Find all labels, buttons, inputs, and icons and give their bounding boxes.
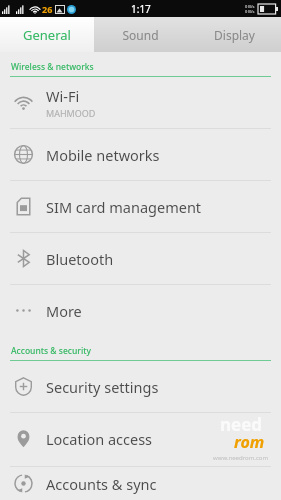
button[interactable]: SIM card management [0, 181, 281, 232]
button[interactable]: Bluetooth [0, 233, 281, 284]
other: Security settings [14, 377, 33, 396]
other: Location access [14, 429, 33, 448]
staticText: MAHMOOD [46, 107, 96, 119]
staticText: General [23, 26, 71, 44]
staticText: Mobile networks [46, 145, 160, 165]
button[interactable]: More [0, 285, 281, 336]
button[interactable]: Display [187, 17, 281, 52]
staticText: Wi-Fi [46, 86, 80, 106]
other: Wi-Fi [14, 93, 33, 112]
staticText: Accounts & security [11, 345, 91, 357]
staticText: Accounts & sync [46, 474, 157, 494]
button[interactable]: Mobile networks [0, 129, 281, 180]
other: Mobile networks [14, 145, 33, 164]
staticText: rom [234, 431, 265, 453]
staticText: www.needrom.com [213, 454, 269, 462]
other: Bluetooth [14, 249, 33, 268]
staticText: More [46, 301, 82, 321]
staticText: 0 B/s [245, 9, 255, 14]
button[interactable]: Location access [0, 413, 281, 464]
button[interactable]: Wi-Fi [0, 77, 281, 128]
button[interactable]: Sound [94, 17, 187, 52]
staticText: Display [214, 27, 255, 43]
button[interactable]: Security settings [0, 361, 281, 412]
staticText: SIM card management [46, 197, 202, 217]
staticText: 0 B/s [245, 4, 255, 9]
button[interactable]: Accounts and sync [0, 467, 281, 500]
staticText: Bluetooth [46, 249, 114, 269]
staticText: Sound [122, 27, 159, 43]
other: Accounts and sync [14, 474, 33, 493]
other: SIM card management [14, 197, 33, 216]
staticText: 1:17 [131, 2, 151, 16]
other: More [14, 301, 33, 320]
staticText: 26 [42, 3, 53, 15]
staticText: need [220, 413, 263, 436]
button[interactable]: General [0, 17, 94, 52]
staticText: Security settings [46, 377, 159, 397]
staticText: Wireless & networks [11, 61, 94, 73]
staticText: Location access [46, 429, 153, 449]
